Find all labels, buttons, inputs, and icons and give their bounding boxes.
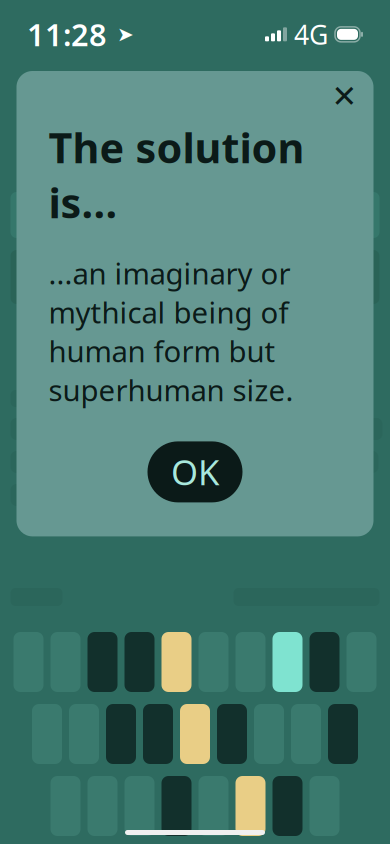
staticText: The solution is... — [48, 120, 304, 230]
button[interactable]: OK — [147, 441, 242, 502]
staticText: ...an imaginary or mythical being of hum… — [48, 254, 293, 409]
button[interactable]: Close — [329, 79, 359, 114]
staticText: OK — [171, 449, 219, 495]
staticText: 11:28 — [27, 14, 107, 55]
staticText: ➤ — [110, 23, 134, 46]
staticText: 4G — [294, 17, 328, 52]
staticText: ✕ — [331, 79, 357, 114]
